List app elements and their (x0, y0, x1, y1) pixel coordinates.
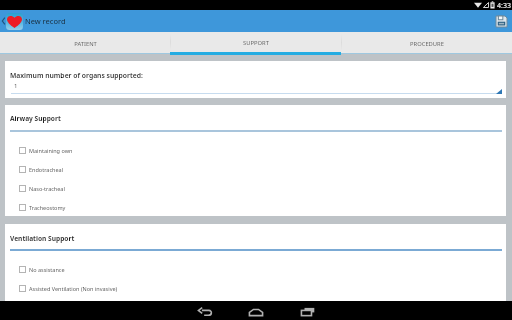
button[interactable]: Assisted Ventilation (Non invasive) (5, 279, 506, 297)
staticText: Ventilation Support (10, 234, 75, 243)
staticText: 4:33 (497, 1, 511, 11)
button[interactable]: PATIENT (0, 32, 170, 55)
staticText: PROCEDURE (410, 40, 444, 48)
button[interactable]: SUPPORT (170, 32, 341, 55)
staticText: Tracheostomy (29, 204, 66, 211)
staticText: New record (25, 16, 66, 26)
staticText: Endotracheal (29, 166, 64, 173)
staticText: No assistance (29, 266, 65, 273)
button[interactable]: Recent apps (289, 301, 326, 320)
staticText: Naso-tracheal (29, 185, 65, 192)
staticText: Maintaining own (29, 147, 73, 154)
button[interactable]: Maintaining own (5, 141, 506, 159)
button[interactable]: Save (490, 10, 512, 32)
staticText: Airway Support (10, 114, 61, 123)
button[interactable]: PROCEDURE (341, 32, 512, 55)
staticText: PATIENT (74, 40, 97, 48)
staticText: 1 (14, 82, 18, 90)
button[interactable]: Naso-tracheal (5, 179, 506, 197)
button[interactable]: Back (186, 301, 223, 320)
button[interactable]: Tracheostomy (5, 198, 506, 216)
button[interactable]: Endotracheal (5, 160, 506, 178)
button[interactable]: Navigate up (0, 10, 6, 32)
staticText: Maximum number of organs supported: (10, 71, 143, 80)
button[interactable]: No assistance (5, 260, 506, 278)
staticText: SUPPORT (243, 39, 269, 47)
staticText: Assisted Ventilation (Non invasive) (29, 285, 118, 292)
button[interactable]: Home (237, 301, 274, 320)
